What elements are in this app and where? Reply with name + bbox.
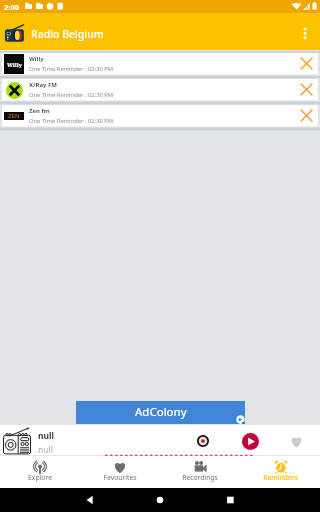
button[interactable]: Explore: [0, 456, 80, 488]
button[interactable]: More options: [290, 17, 320, 47]
button[interactable]: X/Ray FM: [2, 79, 318, 100]
button[interactable]: ZEN: [2, 105, 318, 126]
button[interactable]: AdColony: [76, 401, 245, 424]
staticText: Radio Belgium: [31, 27, 104, 41]
button[interactable]: Delete reminder: [296, 79, 317, 100]
staticText: Willy: [7, 61, 22, 68]
button[interactable]: Favourite: [285, 430, 307, 452]
button[interactable]: Reminders: [240, 456, 320, 488]
staticText: Favourites: [103, 473, 137, 482]
staticText: X/Ray FM: [29, 81, 57, 89]
staticText: One Time Reminder : 02:30 PM: [29, 117, 114, 125]
staticText: 2:00: [4, 2, 19, 12]
staticText: Explore: [28, 473, 52, 482]
staticText: One Time Reminder : 02:30 PM: [29, 91, 114, 99]
button[interactable]: Play: [239, 430, 261, 452]
button[interactable]: Willy: [2, 53, 318, 74]
button[interactable]: Record: [192, 430, 214, 452]
staticText: null: [38, 430, 55, 442]
staticText: Recordings: [182, 473, 218, 482]
staticText: Willy: [29, 55, 44, 63]
button[interactable]: Favourites: [80, 456, 160, 488]
staticText: ZEN: [8, 112, 20, 120]
staticText: Reminders: [263, 473, 298, 482]
staticText: One Time Reminder : 02:30 PM: [29, 65, 114, 73]
staticText: null: [38, 444, 53, 456]
staticText: Zen fm: [29, 107, 50, 115]
button[interactable]: Delete reminder: [296, 105, 317, 126]
button[interactable]: Recordings: [160, 456, 240, 488]
button[interactable]: Delete reminder: [296, 53, 317, 74]
staticText: AdColony: [135, 404, 187, 420]
